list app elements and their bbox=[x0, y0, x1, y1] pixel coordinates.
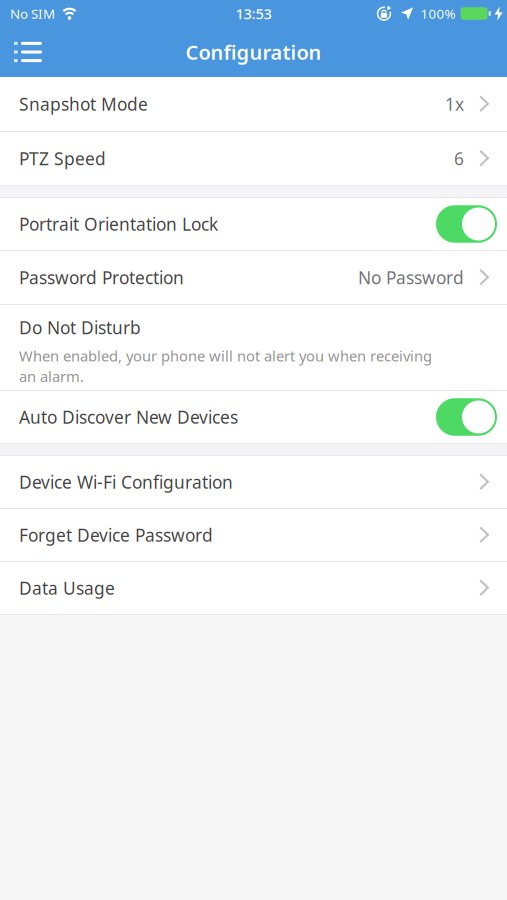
button[interactable]: Password Protection bbox=[0, 251, 507, 304]
button[interactable]: Snapshot Mode bbox=[0, 77, 507, 131]
staticText: 100% bbox=[420, 5, 455, 22]
button[interactable]: Auto Discover New Devices bbox=[436, 398, 497, 436]
button[interactable]: Data Usage bbox=[0, 562, 507, 614]
staticText: 6 bbox=[454, 147, 464, 170]
button[interactable]: Device Wi-Fi Configuration bbox=[0, 456, 507, 508]
staticText: PTZ Speed bbox=[19, 147, 106, 170]
staticText: No SIM bbox=[10, 5, 55, 22]
staticText: When enabled, your phone will not alert … bbox=[19, 346, 432, 365]
staticText: 1x bbox=[445, 92, 464, 115]
staticText: Snapshot Mode bbox=[19, 92, 148, 115]
staticText: Data Usage bbox=[19, 576, 115, 599]
staticText: Configuration bbox=[185, 39, 321, 65]
staticText: Auto Discover New Devices bbox=[19, 405, 238, 428]
staticText: Forget Device Password bbox=[19, 523, 213, 546]
button[interactable]: Portrait Orientation Lock bbox=[436, 205, 497, 243]
button[interactable]: Forget Device Password bbox=[0, 509, 507, 561]
staticText: Portrait Orientation Lock bbox=[19, 212, 218, 235]
button[interactable]: PTZ Speed bbox=[0, 132, 507, 185]
staticText: No Password bbox=[358, 266, 464, 289]
staticText: Device Wi-Fi Configuration bbox=[19, 470, 233, 493]
button[interactable]: Menu bbox=[0, 27, 52, 77]
staticText: Password Protection bbox=[19, 266, 184, 289]
button[interactable]: Do Not Disturb bbox=[0, 305, 507, 390]
staticText: Do Not Disturb bbox=[19, 316, 141, 339]
staticText: an alarm. bbox=[19, 366, 84, 386]
staticText: 13:53 bbox=[235, 4, 271, 23]
